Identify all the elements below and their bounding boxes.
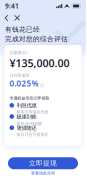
button[interactable]: 随借随还 — [9, 125, 76, 136]
staticText: 新客专享借款优惠 — [16, 110, 48, 114]
staticText: 专属权益等您立即领取 — [9, 96, 49, 101]
staticText: 日利率低至 — [9, 73, 29, 78]
button[interactable]: Back — [1, 12, 11, 24]
button[interactable]: 立即提现 — [8, 157, 78, 169]
staticText: 9:41 — [5, 2, 19, 10]
staticText: 最快3分钟到账 — [16, 121, 42, 126]
staticText: 完成对您的综合评估 — [5, 35, 68, 43]
staticText: 极速到账 — [16, 113, 36, 120]
staticText: ¥135,000.00 — [9, 56, 69, 70]
button[interactable]: Close — [11, 12, 23, 24]
staticText: 立即提现 — [29, 159, 57, 167]
staticText: 有钱花已经 — [5, 25, 40, 34]
button[interactable]: 利息优惠 — [9, 102, 76, 113]
staticText: 随借随还 — [16, 125, 36, 131]
staticText: 查看借款合同 — [31, 171, 55, 176]
button[interactable]: 极速到账 — [9, 113, 76, 125]
staticText: 按日计息可提前还 — [16, 132, 48, 137]
staticText: 0.025% — [9, 78, 38, 89]
staticText: 利息优惠 — [16, 102, 36, 109]
button[interactable]: 查看借款合同 — [31, 169, 55, 177]
staticText: 总额度(元) — [9, 50, 27, 55]
staticText: 起 — [40, 83, 44, 88]
